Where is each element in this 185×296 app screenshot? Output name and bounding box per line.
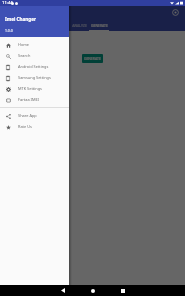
button[interactable]: MTK Settings: [0, 83, 69, 94]
button[interactable]: Search: [0, 50, 69, 61]
button[interactable]: ANALYZE: [69, 19, 89, 31]
staticText: GENERATE: [91, 23, 108, 28]
button[interactable]: Info: [171, 8, 180, 17]
staticText: Search: [18, 53, 31, 58]
button[interactable]: Recents: [111, 285, 135, 296]
button[interactable]: Android Settings: [0, 61, 69, 72]
staticText: Samsung Settings: [18, 75, 51, 80]
staticText: Share App: [18, 113, 37, 118]
button[interactable]: Rate Us: [0, 121, 69, 132]
button[interactable]: Home: [0, 39, 69, 50]
staticText: ANALYZE: [72, 23, 87, 28]
button[interactable]: GENERATE: [82, 54, 103, 63]
button[interactable]: Back: [51, 285, 75, 296]
staticText: Fartaa IMEI: [18, 97, 39, 102]
staticText: Rate Us: [18, 124, 32, 129]
button[interactable]: Home: [81, 285, 105, 296]
staticText: 1.0.0: [5, 28, 13, 33]
staticText: 11:44: [2, 0, 13, 6]
staticText: Home: [18, 42, 30, 47]
button[interactable]: GENERATE: [89, 19, 109, 31]
button[interactable]: Share App: [0, 110, 69, 121]
button[interactable]: Samsung Settings: [0, 72, 69, 83]
staticText: Android Settings: [18, 64, 49, 69]
staticText: MTK Settings: [18, 86, 42, 91]
button[interactable]: Fartaa IMEI: [0, 94, 69, 105]
staticText: Imei Changer: [5, 16, 36, 22]
staticText: GENERATE: [84, 56, 101, 61]
